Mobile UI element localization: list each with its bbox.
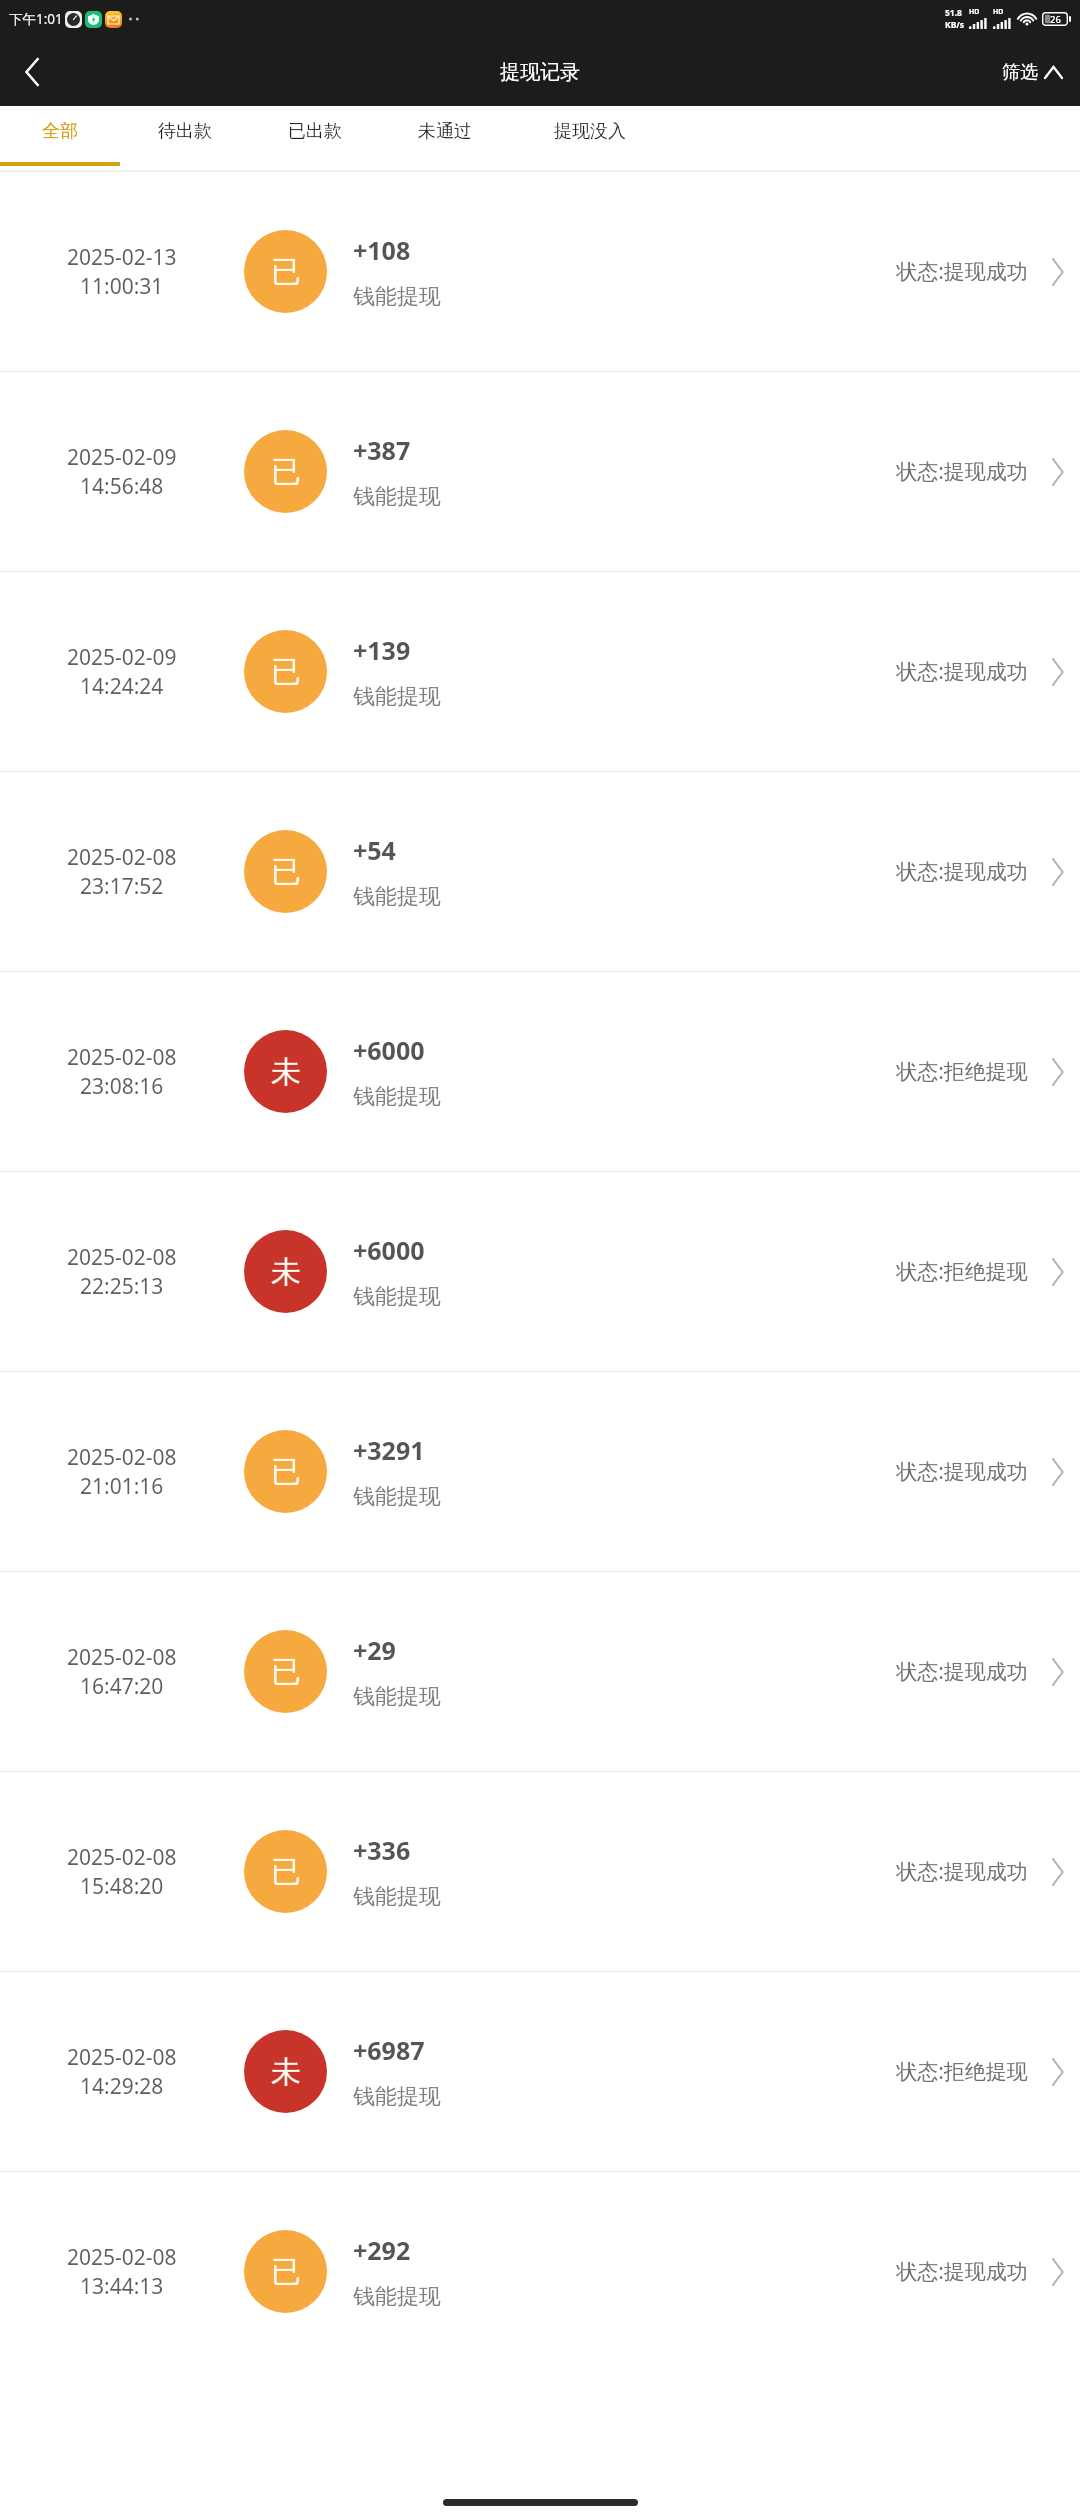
staticText: 13:44:13 bbox=[80, 2272, 164, 2301]
staticText: 状态:提现成功 bbox=[896, 457, 1028, 486]
button[interactable]: 2025-02-08 bbox=[0, 1372, 1080, 1571]
staticText: 筛选 bbox=[1002, 61, 1038, 84]
staticText: 2025-02-08 bbox=[67, 1643, 177, 1672]
staticText: 未 bbox=[271, 1053, 301, 1091]
staticText: 2025-02-13 bbox=[67, 243, 177, 272]
staticText: +6000 bbox=[353, 1033, 425, 1067]
staticText: +336 bbox=[353, 1833, 411, 1867]
staticText: 未 bbox=[271, 2053, 301, 2091]
staticText: 状态:提现成功 bbox=[896, 1657, 1028, 1686]
staticText: +29 bbox=[353, 1633, 396, 1667]
staticText: 状态:提现成功 bbox=[896, 1857, 1028, 1886]
staticText: 已 bbox=[271, 853, 301, 891]
staticText: +3291 bbox=[353, 1433, 425, 1467]
staticText: +6987 bbox=[353, 2033, 425, 2067]
staticText: 钱能提现 bbox=[353, 683, 441, 711]
button[interactable]: 2025-02-08 bbox=[0, 1772, 1080, 1971]
button[interactable]: 返回 bbox=[0, 38, 64, 106]
staticText: 16:47:20 bbox=[80, 1672, 164, 1701]
staticText: HD bbox=[969, 7, 980, 17]
staticText: 钱能提现 bbox=[353, 2083, 441, 2111]
staticText: 23:17:52 bbox=[80, 872, 164, 901]
staticText: +387 bbox=[353, 433, 411, 467]
staticText: 钱能提现 bbox=[353, 1083, 441, 1111]
staticText: 待出款 bbox=[158, 120, 212, 143]
staticText: 钱能提现 bbox=[353, 1283, 441, 1311]
staticText: 已 bbox=[271, 1653, 301, 1691]
staticText: 22:25:13 bbox=[80, 1272, 164, 1301]
staticText: 已 bbox=[271, 1453, 301, 1491]
staticText: +6000 bbox=[353, 1233, 425, 1267]
staticText: 2025-02-08 bbox=[67, 2043, 177, 2072]
button[interactable]: 2025-02-08 bbox=[0, 2172, 1080, 2371]
staticText: 钱能提现 bbox=[353, 283, 441, 311]
staticText: +108 bbox=[353, 233, 411, 267]
staticText: 已 bbox=[271, 1853, 301, 1891]
staticText: 已出款 bbox=[288, 120, 342, 143]
staticText: 状态:提现成功 bbox=[896, 857, 1028, 886]
staticText: 提现没入 bbox=[554, 120, 626, 143]
staticText: 已 bbox=[271, 2253, 301, 2291]
staticText: 下午1:01 bbox=[9, 10, 63, 28]
staticText: 2025-02-08 bbox=[67, 1443, 177, 1472]
button[interactable]: 2025-02-09 bbox=[0, 372, 1080, 571]
button[interactable]: 2025-02-08 bbox=[0, 972, 1080, 1171]
staticText: KB/s bbox=[945, 19, 965, 31]
staticText: 21:01:16 bbox=[80, 1472, 164, 1501]
staticText: 钱能提现 bbox=[353, 483, 441, 511]
staticText: 已 bbox=[271, 453, 301, 491]
staticText: +292 bbox=[353, 2233, 411, 2267]
button[interactable]: 未通过 bbox=[380, 106, 510, 172]
button[interactable]: 2025-02-08 bbox=[0, 1572, 1080, 1771]
staticText: 钱能提现 bbox=[353, 2283, 441, 2311]
staticText: 状态:提现成功 bbox=[896, 2257, 1028, 2286]
staticText: 状态:提现成功 bbox=[896, 657, 1028, 686]
staticText: 提现记录 bbox=[500, 60, 580, 85]
staticText: 未通过 bbox=[418, 120, 472, 143]
staticText: 2025-02-08 bbox=[67, 1843, 177, 1872]
staticText: 2025-02-08 bbox=[67, 1243, 177, 1272]
staticText: 已 bbox=[271, 653, 301, 691]
button[interactable]: 2025-02-08 bbox=[0, 1172, 1080, 1371]
button[interactable]: 2025-02-08 bbox=[0, 772, 1080, 971]
staticText: 11:00:31 bbox=[80, 272, 164, 301]
staticText: 2025-02-09 bbox=[67, 643, 177, 672]
button[interactable]: 2025-02-09 bbox=[0, 572, 1080, 771]
button[interactable]: 2025-02-13 bbox=[0, 172, 1080, 371]
staticText: 状态:提现成功 bbox=[896, 257, 1028, 286]
staticText: 状态:拒绝提现 bbox=[896, 1257, 1028, 1286]
staticText: HD bbox=[993, 7, 1004, 17]
staticText: 钱能提现 bbox=[353, 1883, 441, 1911]
staticText: 状态:提现成功 bbox=[896, 1457, 1028, 1486]
staticText: 状态:拒绝提现 bbox=[896, 2057, 1028, 2086]
staticText: 已 bbox=[271, 253, 301, 291]
button[interactable]: 提现没入 bbox=[510, 106, 670, 172]
button[interactable]: 2025-02-08 bbox=[0, 1972, 1080, 2171]
staticText: 未 bbox=[271, 1253, 301, 1291]
button[interactable]: 全部 bbox=[0, 106, 120, 172]
staticText: 51.8 bbox=[945, 7, 962, 19]
staticText: 15:48:20 bbox=[80, 1872, 164, 1901]
staticText: +139 bbox=[353, 633, 411, 667]
staticText: 全部 bbox=[42, 120, 78, 143]
staticText: 钱能提现 bbox=[353, 1483, 441, 1511]
staticText: 钱能提现 bbox=[353, 883, 441, 911]
staticText: 2025-02-08 bbox=[67, 2243, 177, 2272]
button[interactable]: 待出款 bbox=[120, 106, 250, 172]
staticText: 钱能提现 bbox=[353, 1683, 441, 1711]
button[interactable]: 筛选 bbox=[984, 38, 1080, 106]
staticText: 2025-02-08 bbox=[67, 843, 177, 872]
staticText: 26 bbox=[1050, 13, 1061, 26]
staticText: 23:08:16 bbox=[80, 1072, 164, 1101]
staticText: 2025-02-08 bbox=[67, 1043, 177, 1072]
staticText: 2025-02-09 bbox=[67, 443, 177, 472]
button[interactable]: 已出款 bbox=[250, 106, 380, 172]
staticText: 状态:拒绝提现 bbox=[896, 1057, 1028, 1086]
staticText: +54 bbox=[353, 833, 396, 867]
staticText: 14:56:48 bbox=[80, 472, 164, 501]
staticText: 14:24:24 bbox=[80, 672, 164, 701]
staticText: 14:29:28 bbox=[80, 2072, 164, 2101]
